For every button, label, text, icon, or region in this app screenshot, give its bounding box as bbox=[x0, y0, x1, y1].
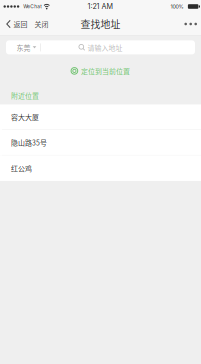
button[interactable]: More bbox=[179, 13, 201, 35]
staticText: 返回 bbox=[13, 19, 27, 29]
button[interactable]: 请输入地址 bbox=[6, 40, 195, 54]
button[interactable]: 定位到当前位置 bbox=[0, 63, 201, 78]
staticText: 容大大厦 bbox=[11, 112, 39, 122]
staticText: 定位到当前位置 bbox=[81, 66, 130, 76]
button[interactable]: 容大大厦 bbox=[0, 104, 201, 130]
button[interactable]: 隐山路35号 bbox=[0, 130, 201, 155]
staticText: WeChat bbox=[23, 4, 42, 9]
staticText: 关闭 bbox=[34, 19, 48, 29]
staticText: 1:21 AM bbox=[87, 2, 113, 11]
button[interactable]: 东莞 bbox=[6, 40, 40, 54]
staticText: 请输入地址 bbox=[88, 42, 123, 52]
staticText: 红公鸡 bbox=[11, 163, 32, 173]
staticText: 附近位置 bbox=[11, 90, 39, 100]
staticText: 东莞 bbox=[16, 42, 30, 52]
staticText: 隐山路35号 bbox=[11, 137, 47, 147]
button[interactable]: 红公鸡 bbox=[0, 155, 201, 181]
button[interactable]: 返回 bbox=[0, 13, 29, 35]
staticText: 查找地址 bbox=[80, 17, 120, 31]
staticText: 100% bbox=[170, 3, 183, 10]
button[interactable]: 关闭 bbox=[29, 13, 51, 35]
